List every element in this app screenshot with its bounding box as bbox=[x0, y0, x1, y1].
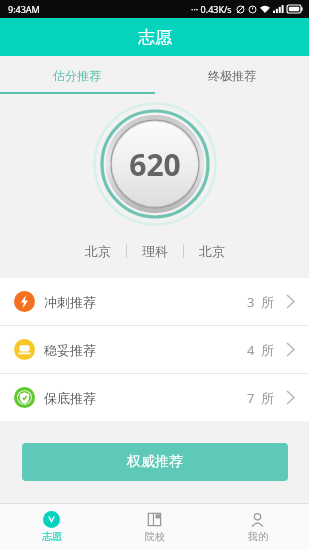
button[interactable]: 保底推荐 bbox=[0, 374, 309, 421]
button[interactable]: 北京 bbox=[70, 234, 126, 268]
staticText: 7 bbox=[247, 389, 255, 407]
button[interactable]: 终极推荐 bbox=[154, 56, 309, 94]
staticText: 3 bbox=[247, 293, 255, 311]
staticText: 北京 bbox=[199, 243, 225, 259]
button[interactable]: 估分推荐 bbox=[0, 56, 154, 94]
staticText: 4 bbox=[247, 341, 255, 359]
staticText: 我的 bbox=[248, 530, 268, 543]
staticText: 志愿 bbox=[138, 27, 172, 48]
button[interactable]: 北京 bbox=[184, 234, 240, 268]
staticText: 理科 bbox=[142, 243, 168, 259]
staticText: 志愿 bbox=[42, 530, 62, 543]
staticText: 所 bbox=[261, 390, 274, 406]
staticText: 院校 bbox=[145, 530, 165, 543]
staticText: 620 bbox=[129, 144, 181, 185]
staticText: 所 bbox=[261, 294, 274, 310]
staticText: 北京 bbox=[85, 243, 111, 259]
staticText: 终极推荐 bbox=[208, 68, 256, 83]
staticText: 稳妥推荐 bbox=[44, 342, 96, 358]
button[interactable]: 院校 bbox=[103, 504, 206, 550]
staticText: 所 bbox=[261, 342, 274, 358]
button[interactable]: 理科 bbox=[127, 234, 183, 268]
staticText: 冲刺推荐 bbox=[44, 294, 96, 310]
staticText: 9:43AM bbox=[8, 3, 40, 15]
staticText: ··· 0.43K/s bbox=[191, 3, 232, 15]
staticText: 保底推荐 bbox=[44, 390, 96, 406]
button[interactable]: 我的 bbox=[206, 504, 309, 550]
staticText: 权威推荐 bbox=[127, 453, 183, 471]
button[interactable]: 冲刺推荐 bbox=[0, 278, 309, 325]
button[interactable]: 权威推荐 bbox=[22, 443, 288, 481]
button[interactable]: 志愿 bbox=[0, 504, 103, 550]
button[interactable]: 稳妥推荐 bbox=[0, 326, 309, 373]
staticText: 估分推荐 bbox=[53, 68, 101, 83]
